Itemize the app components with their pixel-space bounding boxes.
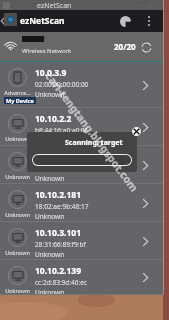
staticText: Unknown <box>35 250 65 259</box>
staticText: ezNetScan <box>20 15 65 27</box>
staticText: Unknown <box>2 287 33 294</box>
staticText: cc:2d:83:9d:46:ec <box>35 278 88 287</box>
button[interactable]: Unknown <box>0 222 163 260</box>
staticText: Unknown <box>35 212 65 221</box>
staticText: 10.10.3.101 <box>35 227 82 239</box>
staticText: Unknown <box>35 90 65 99</box>
button[interactable]: Close <box>132 127 141 136</box>
staticText: 18:02:ae:9b:48:17 <box>35 202 89 211</box>
staticText: 10.10.2.139 <box>35 265 82 277</box>
staticText: " <box>44 35 47 43</box>
button[interactable]: Back <box>0 10 5 32</box>
button[interactable]: Unknown <box>0 260 163 295</box>
staticText: b8:44:16:a0:a0:0f <box>35 126 87 135</box>
staticText: 10.10.2.181 <box>35 189 82 201</box>
button[interactable]: More options <box>142 10 156 32</box>
staticText: Unknown <box>2 173 33 180</box>
staticText: Scanning: target <box>65 138 123 148</box>
staticText: Wireless Network <box>22 47 72 55</box>
staticText: 02:00:00:00:00:00 <box>35 80 89 89</box>
staticText: Unknown <box>2 211 33 218</box>
button[interactable]: Unknown <box>0 108 163 146</box>
staticText: 10.10.2.2 <box>35 113 72 125</box>
staticText: My Device <box>6 97 34 104</box>
button[interactable]: Advance... <box>0 62 163 108</box>
staticText: Advance... <box>2 89 33 96</box>
staticText: 20/20 <box>114 41 136 52</box>
staticText: Unknown <box>2 249 33 256</box>
staticText: cari-tengtang.blogspot.com <box>42 69 141 194</box>
button[interactable]: Refresh <box>138 39 154 55</box>
staticText: 10.10.2.5 <box>35 151 72 163</box>
button[interactable]: Statistics <box>115 10 136 32</box>
staticText: 44:d9:e7:5e:a8:11 <box>35 164 89 173</box>
staticText: Unknown <box>35 174 65 183</box>
staticText: ezNetScan <box>37 1 72 11</box>
button[interactable]: Unknown <box>0 184 163 222</box>
staticText: Unknown <box>2 135 33 142</box>
staticText: 28:31:66:89:f9:bf <box>35 240 86 249</box>
staticText: 10.0.3.9 <box>35 67 67 79</box>
staticText: Unknown <box>35 288 65 297</box>
button[interactable]: Unknown <box>0 146 163 184</box>
